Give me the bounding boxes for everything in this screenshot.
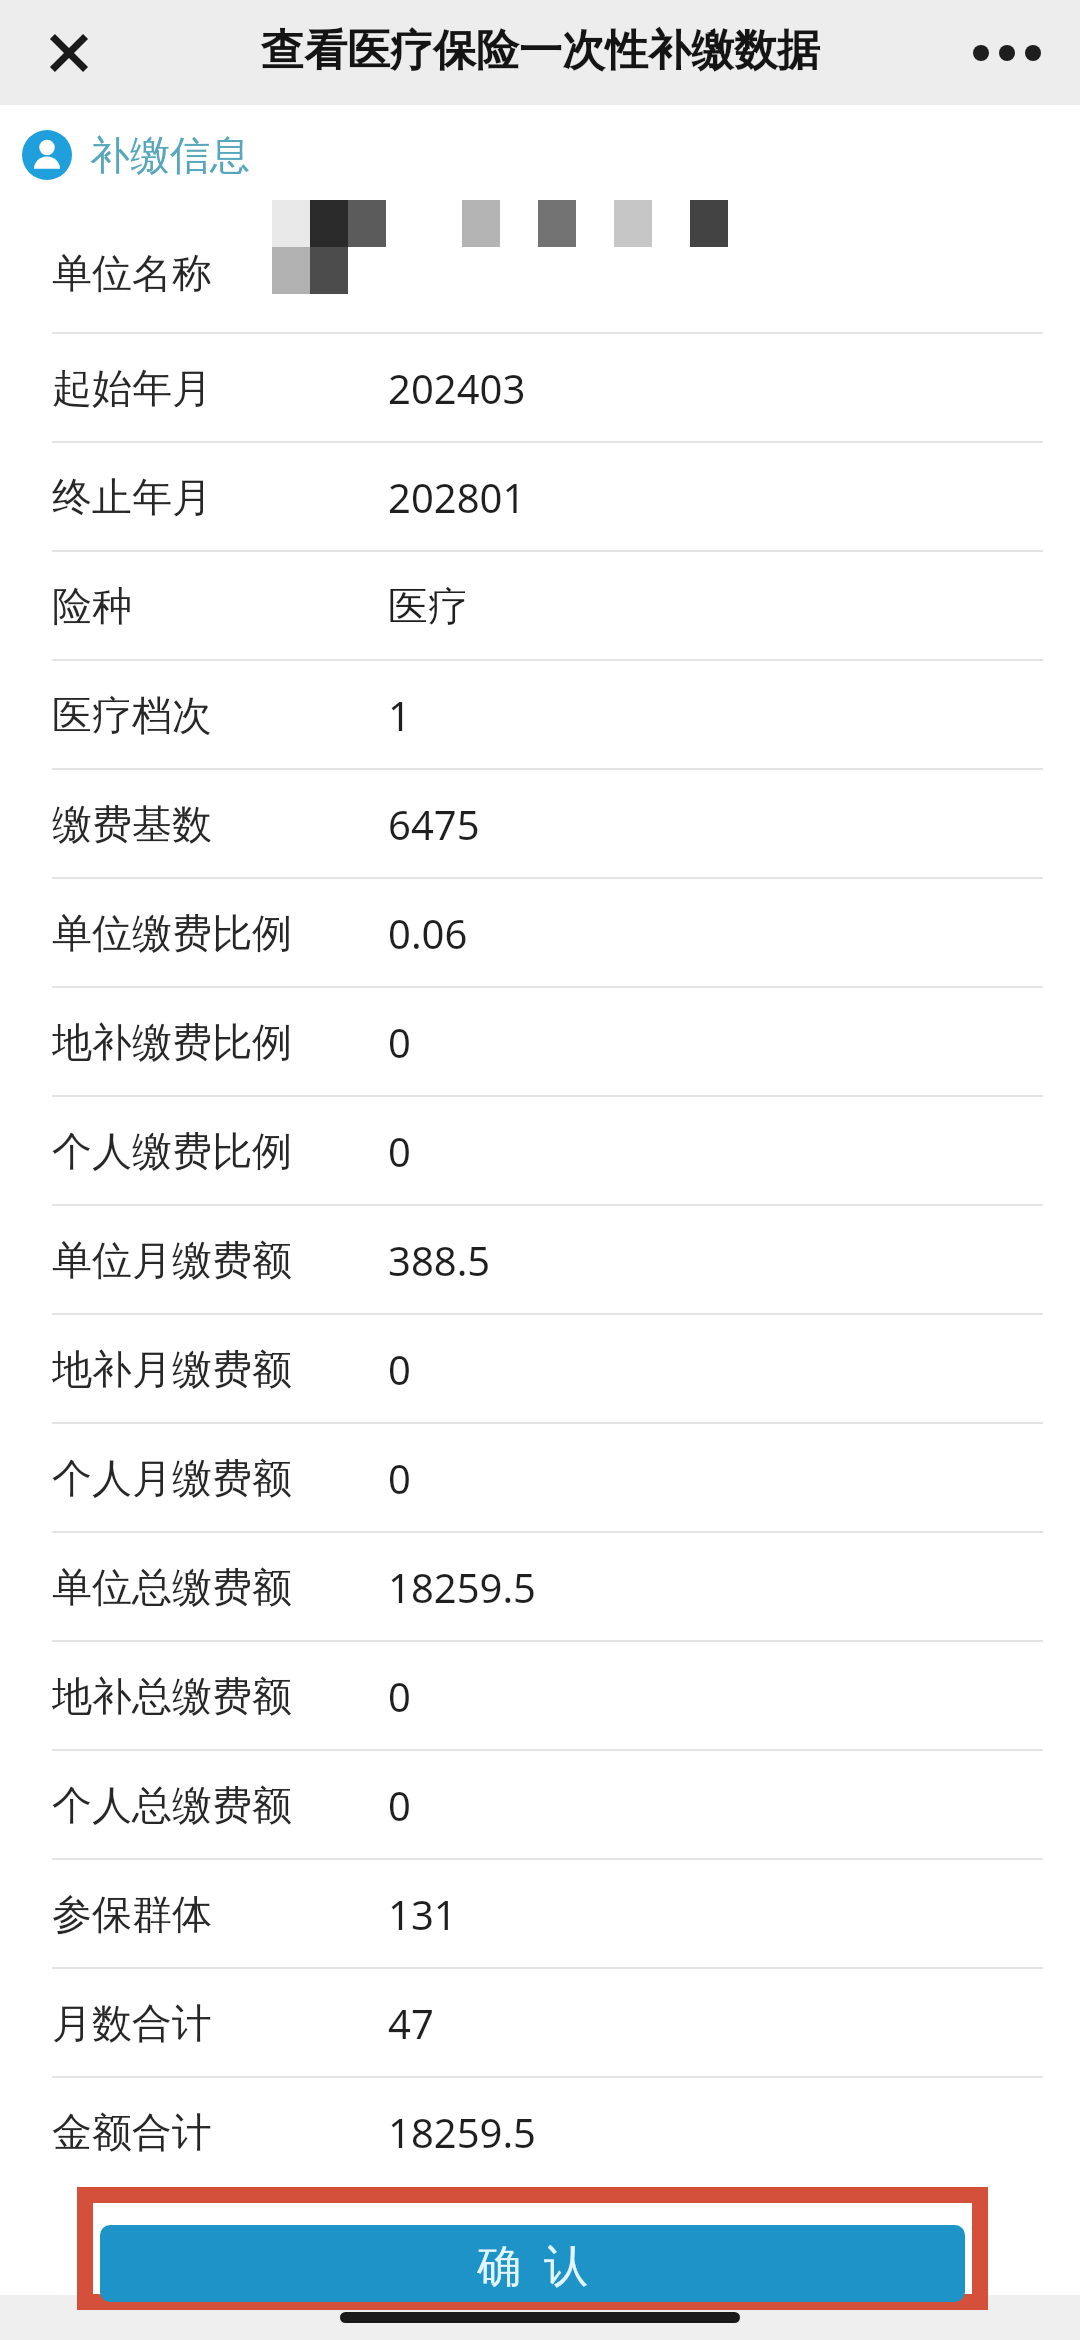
staticText: 缴费基数	[52, 799, 388, 849]
staticText: 0	[388, 1451, 411, 1505]
button[interactable]: 地补总缴费额	[29, 1642, 1053, 1749]
button[interactable]: 起始年月	[29, 334, 1053, 441]
button[interactable]: 个人月缴费额	[29, 1424, 1053, 1531]
staticText: 险种	[52, 581, 388, 631]
staticText: 0	[388, 1124, 411, 1178]
staticText: 医疗档次	[52, 690, 388, 740]
staticText: 单位缴费比例	[52, 908, 388, 958]
button[interactable]: 单位月缴费额	[29, 1206, 1053, 1313]
staticText: 金额合计	[52, 2107, 388, 2157]
staticText: 0	[388, 1342, 411, 1396]
staticText: 单位名称	[52, 248, 212, 298]
staticText: 地补缴费比例	[52, 1017, 388, 1067]
button[interactable]: 缴费基数	[29, 770, 1053, 877]
staticText: 18259.5	[388, 1560, 536, 1614]
button[interactable]: 单位总缴费额	[29, 1533, 1053, 1640]
staticText: 202801	[388, 470, 526, 524]
staticText: 参保群体	[52, 1889, 388, 1939]
staticText: 0.06	[388, 906, 468, 960]
staticText: 202403	[388, 361, 526, 415]
staticText: 起始年月	[52, 363, 388, 413]
staticText: 6475	[388, 797, 480, 851]
staticText: 单位月缴费额	[52, 1235, 388, 1285]
staticText: 18259.5	[388, 2105, 536, 2159]
staticText: 131	[388, 1887, 457, 1941]
staticText: 个人月缴费额	[52, 1453, 388, 1503]
button[interactable]: 确 认	[100, 2225, 965, 2302]
staticText: 0	[388, 1669, 411, 1723]
staticText: 确 认	[477, 2234, 588, 2294]
button[interactable]: 地补缴费比例	[29, 988, 1053, 1095]
button[interactable]: 险种	[29, 552, 1053, 659]
staticText: 医疗	[388, 581, 468, 631]
staticText: 个人缴费比例	[52, 1126, 388, 1176]
staticText: 月数合计	[52, 1998, 388, 2048]
staticText: 补缴信息	[90, 130, 250, 180]
button[interactable]: 月数合计	[29, 1969, 1053, 2076]
staticText: 0	[388, 1778, 411, 1832]
button[interactable]: 地补月缴费额	[29, 1315, 1053, 1422]
button[interactable]: 终止年月	[29, 443, 1053, 550]
staticText: 个人总缴费额	[52, 1780, 388, 1830]
staticText: 地补月缴费额	[52, 1344, 388, 1394]
button[interactable]: 参保群体	[29, 1860, 1053, 1967]
button[interactable]: 金额合计	[29, 2078, 1053, 2185]
staticText: 1	[388, 688, 411, 742]
staticText: 单位总缴费额	[52, 1562, 388, 1612]
staticText: 0	[388, 1015, 411, 1069]
button[interactable]: 个人缴费比例	[29, 1097, 1053, 1204]
staticText: 查看医疗保险一次性补缴数据	[261, 24, 820, 78]
button[interactable]: More options	[952, 0, 1062, 105]
staticText: 终止年月	[52, 472, 388, 522]
staticText: 地补总缴费额	[52, 1671, 388, 1721]
button[interactable]: 医疗档次	[29, 661, 1053, 768]
staticText: 47	[388, 1996, 434, 2050]
button[interactable]: Close	[14, 0, 124, 105]
staticText: 388.5	[388, 1233, 491, 1287]
button[interactable]: 单位缴费比例	[29, 879, 1053, 986]
button[interactable]: 个人总缴费额	[29, 1751, 1053, 1858]
